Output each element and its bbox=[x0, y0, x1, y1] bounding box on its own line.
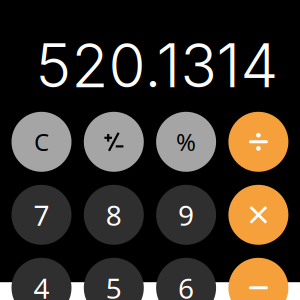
staticText: 6 bbox=[178, 269, 194, 300]
staticText: 520.1314 bbox=[35, 29, 278, 102]
button[interactable]: 6 bbox=[156, 258, 216, 300]
button[interactable]: Plus minus bbox=[84, 112, 144, 172]
staticText: 5 bbox=[106, 269, 122, 300]
button[interactable]: 5 bbox=[84, 258, 144, 300]
button[interactable]: 9 bbox=[156, 185, 216, 245]
button[interactable]: 4 bbox=[11, 258, 71, 300]
button[interactable]: 7 bbox=[11, 185, 71, 245]
staticText: 8 bbox=[106, 196, 122, 233]
staticText: 9 bbox=[178, 196, 194, 233]
button[interactable]: Multiply bbox=[228, 185, 288, 245]
button[interactable]: C bbox=[11, 112, 71, 172]
button[interactable]: Minus bbox=[228, 258, 288, 300]
staticText: C bbox=[34, 126, 49, 158]
button[interactable]: Divide bbox=[228, 112, 288, 172]
button[interactable]: 8 bbox=[84, 185, 144, 245]
staticText: % bbox=[176, 126, 196, 158]
staticText: 4 bbox=[33, 269, 49, 300]
staticText: 7 bbox=[33, 196, 49, 233]
button[interactable]: % bbox=[156, 112, 216, 172]
